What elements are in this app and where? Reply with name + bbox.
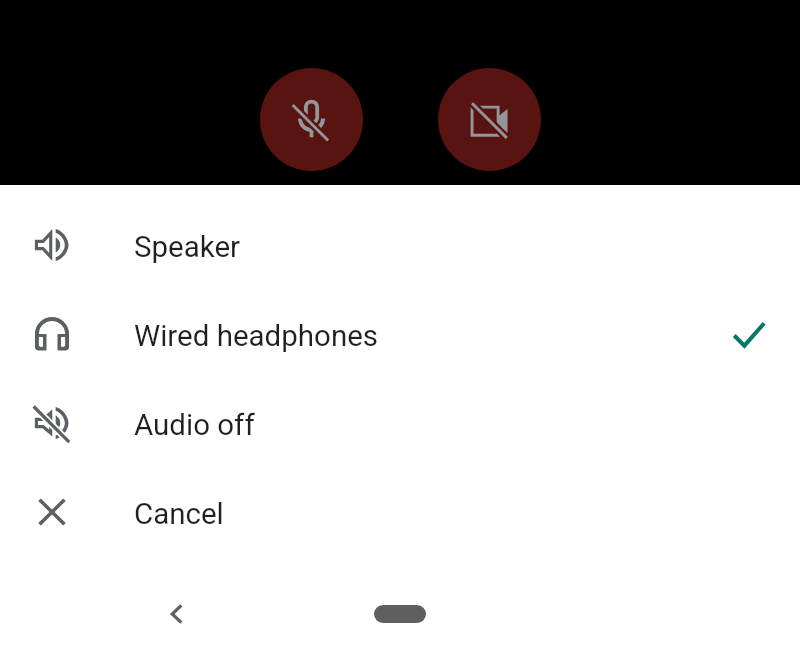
- staticText: Audio off: [134, 408, 255, 443]
- button[interactable]: Back: [153, 590, 201, 638]
- button[interactable]: Cancel: [0, 467, 800, 556]
- button[interactable]: Audio off: [0, 378, 800, 467]
- button[interactable]: Unmute microphone: [260, 68, 363, 171]
- button[interactable]: Wired headphones: [0, 289, 800, 378]
- button[interactable]: Home: [374, 605, 426, 623]
- staticText: Cancel: [134, 497, 224, 532]
- button[interactable]: Turn on camera: [438, 68, 541, 171]
- staticText: Wired headphones: [134, 319, 379, 354]
- button[interactable]: Speaker: [0, 200, 800, 289]
- staticText: Speaker: [134, 230, 241, 265]
